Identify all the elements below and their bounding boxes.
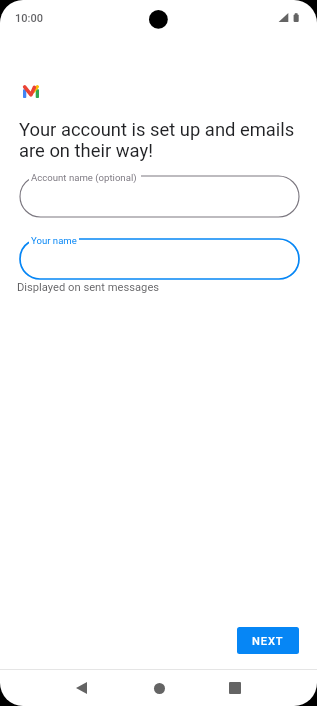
staticText: Displayed on sent messages	[17, 281, 160, 294]
staticText: Your account is set up and emails are on…	[19, 119, 298, 161]
staticText: 10:00	[15, 12, 43, 25]
button[interactable]: Account name (optional)	[20, 176, 299, 217]
staticText: Account name (optional)	[31, 172, 137, 183]
button[interactable]: Home	[138, 667, 180, 706]
staticText: NEXT	[252, 635, 284, 648]
button[interactable]: Back	[60, 667, 102, 706]
button[interactable]: Your name	[20, 239, 299, 279]
button[interactable]: Recent apps	[214, 667, 256, 706]
button[interactable]: NEXT	[237, 627, 299, 654]
staticText: Your name	[31, 235, 77, 246]
